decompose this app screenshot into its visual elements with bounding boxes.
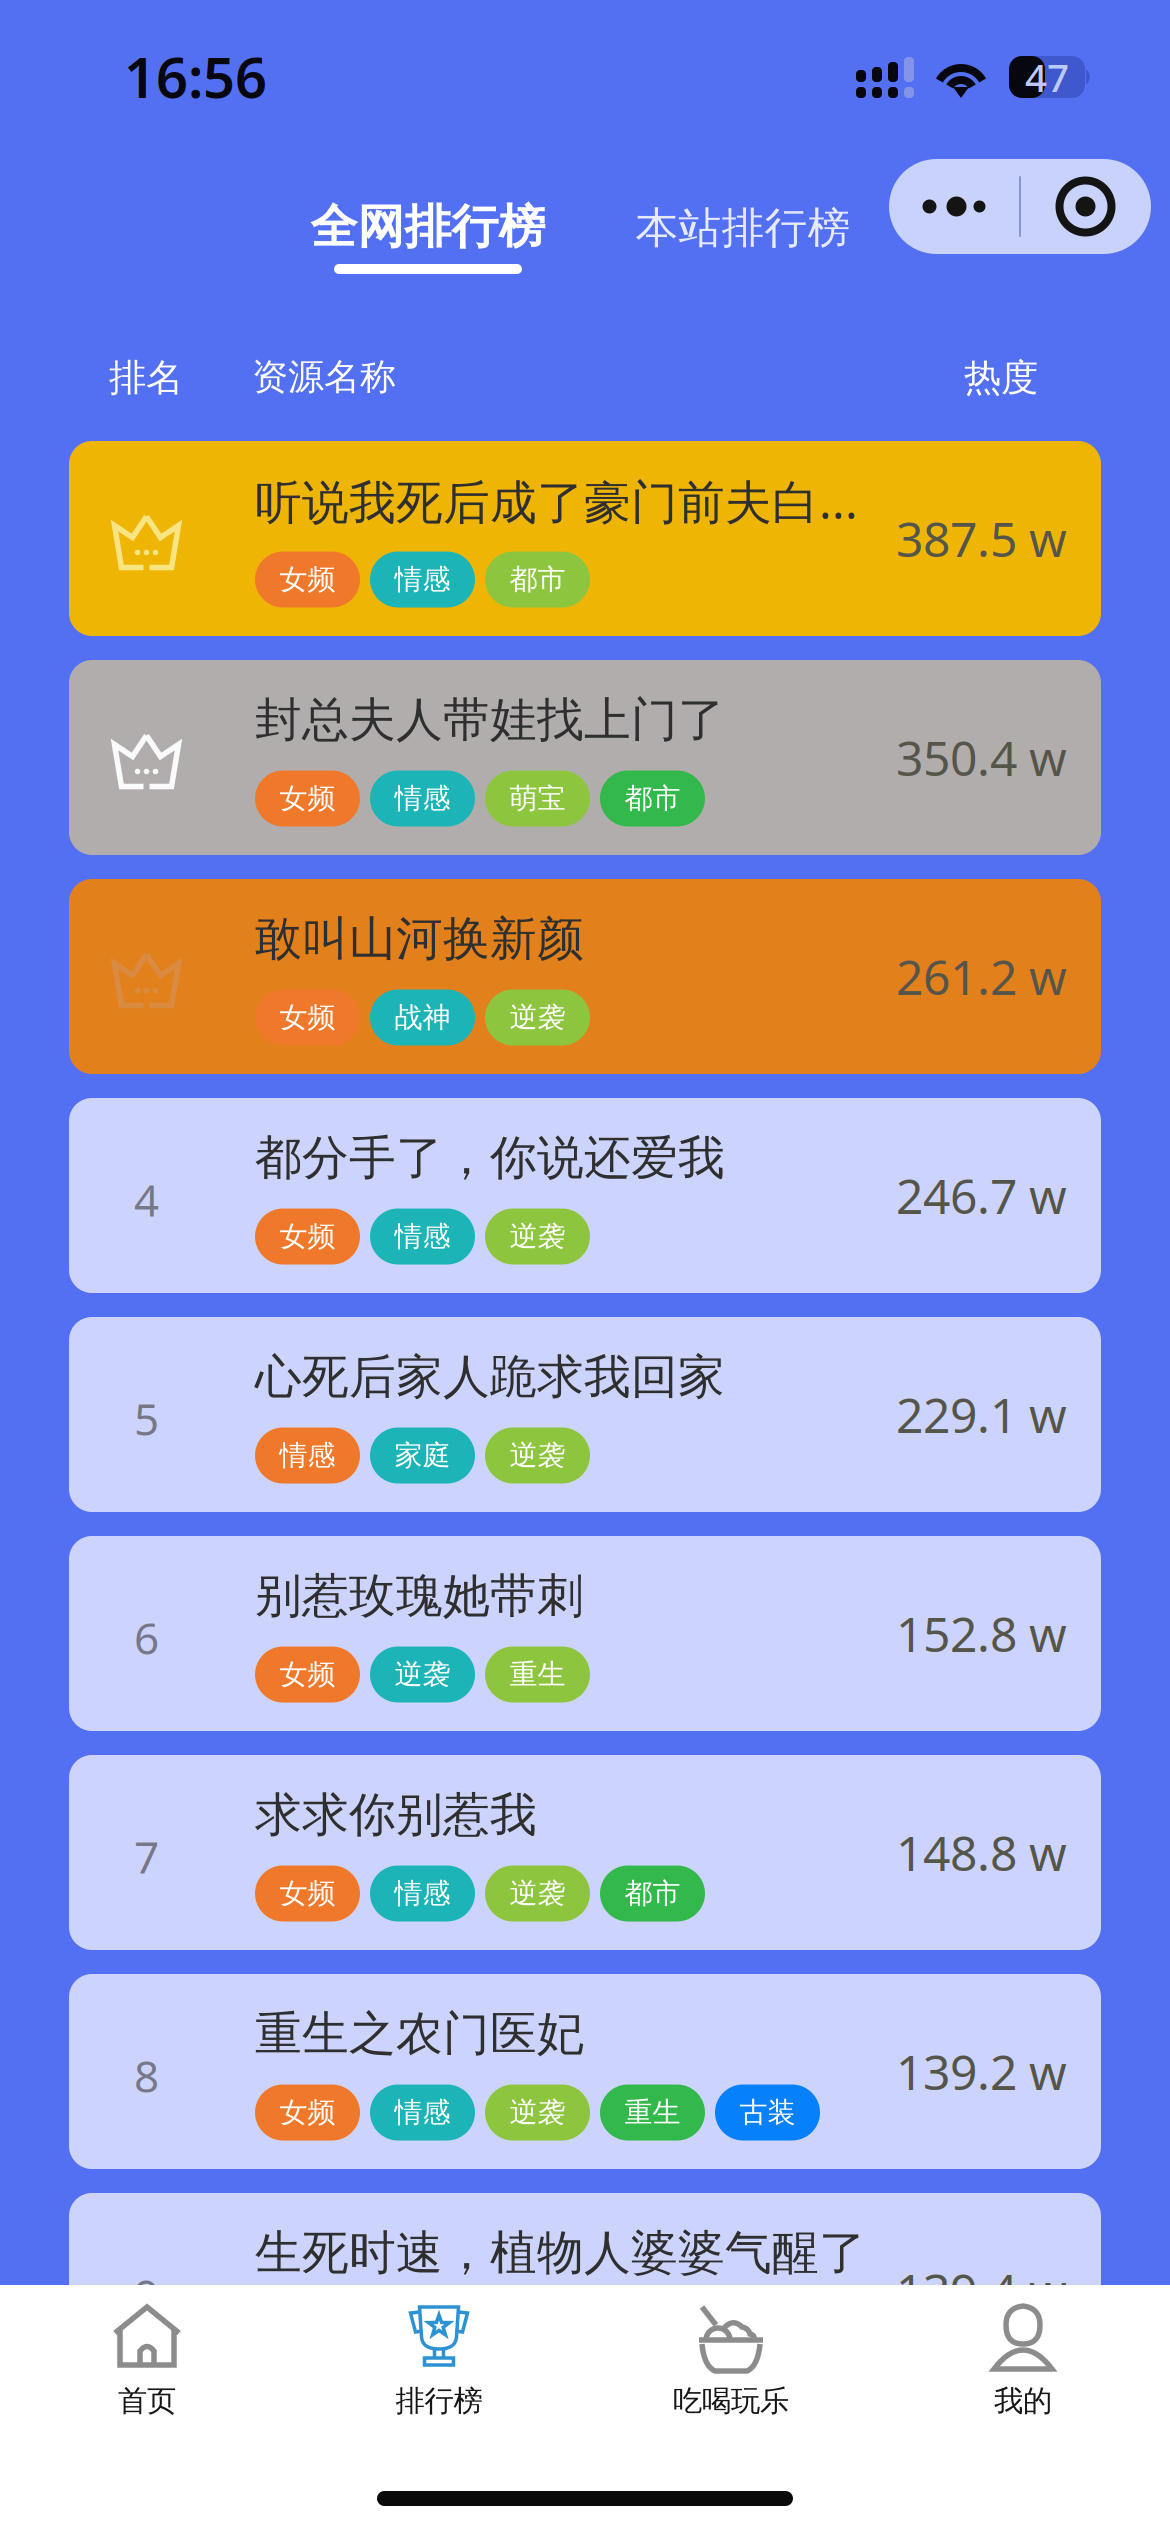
- button[interactable]: 本站排行榜: [625, 199, 861, 257]
- staticText: 387.5 w: [896, 507, 1067, 570]
- staticText: 女频: [279, 1657, 335, 1692]
- staticText: 重生: [624, 2095, 680, 2130]
- staticText: 139.2 w: [896, 2040, 1067, 2103]
- staticText: 逆袭: [509, 2095, 565, 2130]
- staticText: 情感: [279, 1438, 335, 1473]
- staticText: 全网排行榜: [310, 198, 545, 256]
- button[interactable]: 9: [69, 2195, 1101, 2390]
- button[interactable]: 6: [69, 1538, 1101, 1733]
- staticText: 女频: [279, 562, 335, 597]
- staticText: 350.4 w: [896, 726, 1067, 789]
- staticText: 女频: [279, 2095, 335, 2130]
- staticText: 女频: [279, 1219, 335, 1254]
- staticText: 情感: [394, 562, 450, 597]
- staticText: 排行榜: [395, 2383, 482, 2419]
- button[interactable]: 封总夫人带娃找上门了: [69, 662, 1101, 857]
- staticText: 吃喝玩乐: [673, 2383, 789, 2419]
- staticText: 古装: [739, 2095, 795, 2130]
- staticText: 229.1 w: [896, 1383, 1067, 1446]
- button[interactable]: 4: [69, 1100, 1101, 1295]
- staticText: 女频: [279, 781, 335, 816]
- staticText: 敢叫山河换新颜: [255, 910, 584, 968]
- staticText: 重生: [509, 1657, 565, 1692]
- staticText: 16:56: [124, 39, 267, 113]
- staticText: 听说我死后成了豪门前夫白...: [255, 470, 858, 532]
- staticText: 情感: [394, 2095, 450, 2130]
- button[interactable]: 5: [69, 1319, 1101, 1514]
- staticText: 5: [134, 1389, 159, 1448]
- staticText: 逆袭: [509, 1438, 565, 1473]
- staticText: 封总夫人带娃找上门了: [255, 691, 725, 749]
- staticText: 152.8 w: [896, 1602, 1067, 1665]
- staticText: 本站排行榜: [635, 202, 850, 254]
- staticText: 女频: [279, 1876, 335, 1911]
- staticText: 都市: [509, 562, 565, 597]
- staticText: 都分手了，你说还爱我: [255, 1129, 725, 1187]
- staticText: 9: [134, 2265, 159, 2324]
- staticText: 148.8 w: [896, 1821, 1067, 1884]
- staticText: 139.4 w: [896, 2259, 1067, 2322]
- button[interactable]: 听说我死后成了豪门前夫白...: [69, 443, 1101, 638]
- staticText: 家庭: [394, 1438, 450, 1473]
- staticText: 资源名称: [252, 355, 396, 399]
- button[interactable]: 排行榜: [293, 2304, 585, 2444]
- staticText: 4: [134, 1170, 159, 1229]
- staticText: 热度: [964, 355, 1038, 401]
- staticText: 我的: [994, 2383, 1052, 2419]
- staticText: 重生之农门医妃: [255, 2005, 584, 2063]
- staticText: 情感: [394, 1876, 450, 1911]
- staticText: 求求你别惹我: [255, 1786, 537, 1844]
- staticText: 女频: [279, 1000, 335, 1035]
- staticText: 生死时速，植物人婆婆气醒了: [255, 2224, 866, 2282]
- staticText: 261.2 w: [896, 945, 1067, 1008]
- staticText: 246.7 w: [896, 1164, 1067, 1227]
- button[interactable]: 敢叫山河换新颜: [69, 881, 1101, 1076]
- staticText: 情感: [394, 781, 450, 816]
- button[interactable]: 首页: [1, 2304, 293, 2444]
- staticText: 情感: [394, 2314, 450, 2349]
- staticText: 情感: [394, 1219, 450, 1254]
- staticText: 逆袭: [509, 1219, 565, 1254]
- staticText: 逆袭: [509, 1876, 565, 1911]
- staticText: 首页: [118, 2383, 176, 2419]
- staticText: 战神: [394, 1000, 450, 1035]
- button[interactable]: More options: [889, 159, 1020, 254]
- button[interactable]: 吃喝玩乐: [585, 2304, 877, 2444]
- staticText: 7: [134, 1827, 159, 1886]
- staticText: 8: [134, 2046, 159, 2105]
- staticText: 排名: [109, 355, 183, 401]
- staticText: 47: [1025, 51, 1069, 103]
- staticText: 萌宝: [509, 781, 565, 816]
- button[interactable]: 全网排行榜: [300, 159, 556, 269]
- staticText: 心死后家人跪求我回家: [255, 1348, 725, 1406]
- staticText: 6: [134, 1608, 159, 1667]
- staticText: 都市: [624, 781, 680, 816]
- staticText: 别惹玫瑰她带刺: [255, 1567, 584, 1625]
- staticText: 逆袭: [509, 1000, 565, 1035]
- button[interactable]: Close mini program: [1020, 159, 1151, 254]
- button[interactable]: 8: [69, 1976, 1101, 2171]
- button[interactable]: 我的: [877, 2304, 1169, 2444]
- staticText: 都市: [624, 1876, 680, 1911]
- button[interactable]: 7: [69, 1757, 1101, 1952]
- staticText: 逆袭: [394, 1657, 450, 1692]
